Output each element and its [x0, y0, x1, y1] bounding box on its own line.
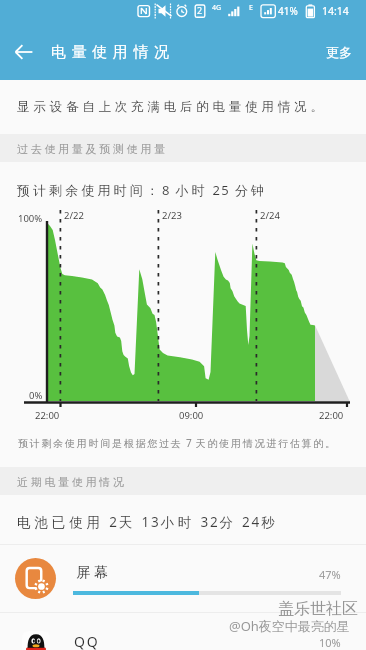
staticText: E: [249, 3, 253, 13]
staticText: 14:14: [322, 4, 349, 18]
button[interactable]: 更多: [312, 24, 366, 80]
staticText: 100%: [18, 212, 43, 225]
staticText: 预计剩余使用时间：8 小时 25 分钟: [17, 181, 268, 199]
staticText: 电量使用情况: [51, 43, 175, 62]
staticText: 41%: [278, 4, 298, 18]
staticText: 近期电量使用情况: [17, 475, 127, 489]
staticText: 2/24: [260, 209, 280, 222]
staticText: @Oh夜空中最亮的星: [229, 617, 350, 635]
staticText: 4G: [212, 3, 222, 13]
button[interactable]: 屏幕: [0, 545, 366, 612]
staticText: 2/23: [162, 209, 182, 222]
staticText: 更多: [326, 44, 352, 60]
staticText: 预计剩余使用时间是根据您过去 7 天的使用情况进行估算的。: [18, 436, 337, 450]
staticText: 47%: [319, 567, 341, 582]
button[interactable]: 返回: [0, 28, 48, 76]
staticText: QQ: [74, 632, 100, 650]
staticText: 22:00: [319, 409, 344, 422]
staticText: 屏幕: [74, 564, 110, 582]
staticText: 电池已使用 2天 13小时 32分 24秒: [17, 513, 279, 531]
staticText: 显示设备自上次充满电后的电量使用情况。: [17, 99, 327, 115]
staticText: 盖乐世社区: [278, 599, 358, 619]
staticText: 2: [197, 4, 203, 16]
staticText: 过去使用量及预测使用量: [17, 142, 168, 156]
staticText: 22:00: [35, 409, 60, 422]
staticText: 0%: [29, 389, 43, 402]
staticText: 2/22: [64, 209, 84, 222]
button[interactable]: QQ: [0, 613, 366, 650]
staticText: 10%: [319, 635, 341, 650]
staticText: 09:00: [179, 409, 204, 422]
